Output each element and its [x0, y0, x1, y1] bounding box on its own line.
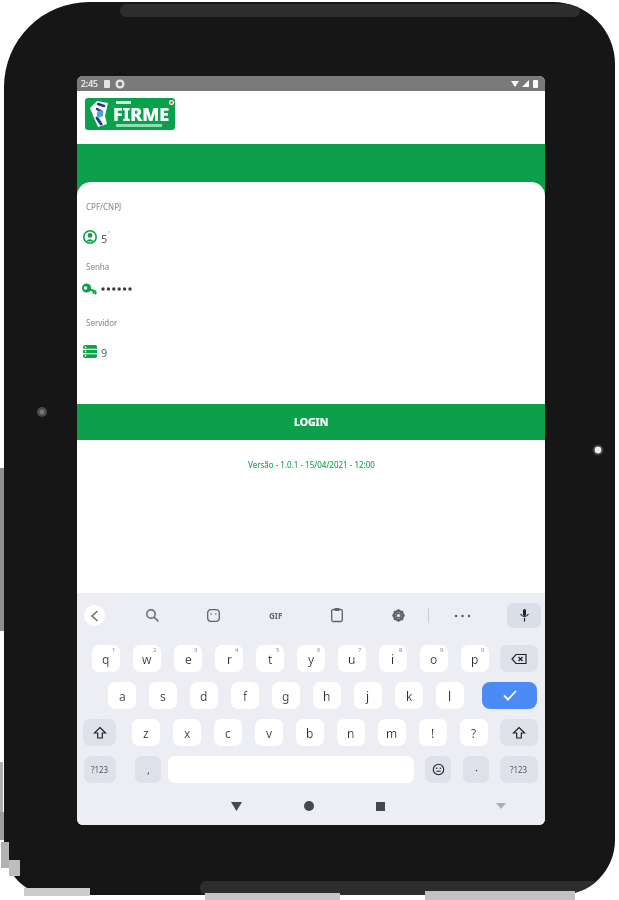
staticText: f — [243, 688, 248, 704]
button[interactable]: ?123 — [500, 756, 538, 783]
staticText: u — [348, 651, 356, 667]
staticText: 5 — [101, 231, 108, 246]
staticText: g — [282, 688, 290, 704]
button[interactable]: d — [190, 682, 218, 709]
staticText: b — [306, 725, 314, 741]
staticText: c — [225, 725, 231, 741]
button[interactable] — [219, 789, 254, 823]
staticText: n — [347, 725, 355, 741]
button[interactable] — [84, 605, 105, 626]
button[interactable] — [331, 608, 343, 622]
button[interactable]: y — [297, 645, 325, 672]
staticText: i — [391, 651, 395, 667]
button[interactable] — [392, 609, 405, 622]
button[interactable] — [207, 609, 220, 622]
button[interactable]: · — [463, 756, 489, 783]
button[interactable]: u — [338, 645, 366, 672]
staticText: 9 — [101, 345, 108, 360]
staticText: 2 — [153, 646, 157, 654]
staticText: t — [268, 651, 273, 667]
staticText: Versão - 1.0.1 - 15/04/2021 - 12:00 — [248, 459, 375, 470]
button[interactable] — [454, 614, 471, 618]
staticText: o — [430, 651, 438, 667]
button[interactable]: w — [133, 645, 161, 672]
button[interactable]: q — [92, 645, 120, 672]
staticText: 1 — [112, 646, 116, 654]
button[interactable]: i — [379, 645, 407, 672]
button[interactable]: z — [132, 719, 160, 746]
staticText: q — [102, 651, 110, 667]
button[interactable]: LOGIN — [77, 404, 545, 440]
button[interactable]: ?123 — [84, 756, 116, 783]
staticText: ?123 — [91, 764, 109, 775]
button[interactable]: e — [174, 645, 202, 672]
button[interactable] — [482, 682, 537, 709]
button[interactable] — [500, 645, 538, 672]
staticText: · — [475, 762, 478, 777]
staticText: p — [471, 651, 479, 667]
button[interactable]: n — [337, 719, 365, 746]
button[interactable]: a — [108, 682, 136, 709]
staticText: v — [266, 725, 273, 741]
button[interactable]: k — [395, 682, 423, 709]
staticText: 3 — [194, 646, 198, 654]
button[interactable]: b — [296, 719, 324, 746]
button[interactable]: x — [173, 719, 201, 746]
button[interactable]: s — [149, 682, 177, 709]
button[interactable]: p — [461, 645, 489, 672]
staticText: CPF/CNPJ — [86, 201, 122, 212]
staticText: l — [448, 688, 452, 704]
button[interactable] — [363, 789, 398, 823]
button[interactable]: o — [420, 645, 448, 672]
staticText: 7 — [358, 646, 362, 654]
staticText: w — [142, 651, 152, 667]
staticText: GIF — [269, 610, 283, 621]
staticText: Servidor — [86, 317, 118, 328]
button[interactable] — [146, 609, 159, 622]
staticText: 8 — [399, 646, 403, 654]
staticText: e — [185, 651, 192, 667]
staticText: 0 — [481, 646, 485, 654]
staticText: r — [227, 651, 232, 667]
button[interactable] — [291, 789, 326, 823]
button[interactable]: m — [378, 719, 406, 746]
staticText: ! — [431, 725, 435, 741]
button[interactable]: t — [256, 645, 284, 672]
staticText: 4 — [235, 646, 239, 654]
button[interactable]: r — [215, 645, 243, 672]
button[interactable] — [507, 603, 541, 628]
button[interactable]: ! — [419, 719, 447, 746]
staticText: ? — [471, 725, 477, 741]
button[interactable]: ? — [460, 719, 488, 746]
button[interactable]: f — [231, 682, 259, 709]
staticText: x — [184, 725, 191, 741]
button[interactable] — [425, 756, 451, 783]
button[interactable] — [500, 719, 538, 746]
button[interactable]: j — [354, 682, 382, 709]
staticText: 2:45 — [81, 78, 98, 90]
button[interactable]: FIRME — [85, 98, 175, 130]
staticText: 6 — [317, 646, 321, 654]
button[interactable]: GIF — [263, 607, 288, 624]
staticText: ' — [108, 229, 110, 240]
staticText: FIRME — [113, 102, 170, 127]
staticText: s — [160, 688, 166, 704]
button[interactable]: g — [272, 682, 300, 709]
button[interactable] — [83, 719, 116, 746]
button[interactable]: l — [436, 682, 464, 709]
button[interactable] — [485, 791, 517, 821]
staticText: k — [406, 688, 413, 704]
staticText: a — [119, 688, 126, 704]
staticText: ?123 — [510, 764, 528, 775]
button[interactable]: c — [214, 719, 242, 746]
button[interactable]: h — [313, 682, 341, 709]
staticText: h — [323, 688, 331, 704]
button[interactable]: , — [135, 756, 161, 783]
staticText: y — [308, 651, 315, 667]
staticText: LOGIN — [294, 415, 329, 429]
staticText: 5 — [276, 646, 280, 654]
staticText: z — [143, 725, 149, 741]
button[interactable]: v — [255, 719, 283, 746]
staticText: Senha — [86, 261, 110, 272]
